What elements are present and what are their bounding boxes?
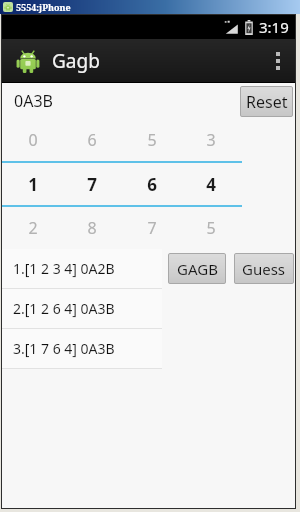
button[interactable]: 6 — [136, 163, 168, 205]
button[interactable]: More options — [260, 39, 295, 83]
button[interactable]: 7 — [136, 207, 168, 249]
staticText: 3:19 — [259, 17, 289, 37]
staticText: Reset — [246, 91, 288, 113]
staticText: 1 — [28, 173, 38, 196]
staticText: 7 — [87, 173, 97, 196]
button[interactable]: 2 — [17, 207, 49, 249]
staticText: 7 — [147, 217, 157, 239]
button[interactable]: Reset — [240, 86, 293, 117]
button[interactable]: 8 — [76, 207, 108, 249]
button[interactable]: 6 — [76, 119, 108, 161]
staticText: 0 — [28, 129, 38, 151]
staticText: 5 — [206, 217, 216, 239]
staticText: 3 — [206, 129, 216, 151]
staticText: 1.[1 2 3 4] 0A2B — [13, 259, 115, 278]
staticText: 0A3B — [14, 90, 53, 112]
staticText: 8 — [87, 217, 97, 239]
button[interactable]: 1 — [17, 163, 49, 205]
staticText: Gagb — [52, 48, 100, 74]
staticText: 5 — [147, 129, 157, 151]
staticText: 6 — [147, 173, 157, 196]
staticText: 2.[1 2 6 4] 0A3B — [13, 299, 115, 318]
staticText: Guess — [242, 259, 286, 279]
staticText: 4 — [206, 173, 216, 196]
button[interactable]: 2.[1 2 6 4] 0A3B — [2, 289, 162, 328]
button[interactable]: 3 — [195, 119, 227, 161]
button[interactable]: 3.[1 7 6 4] 0A3B — [2, 329, 162, 368]
button[interactable]: 4 — [195, 163, 227, 205]
button[interactable]: 7 — [76, 163, 108, 205]
staticText: GAGB — [177, 259, 218, 279]
staticText: 5554:jPhone — [16, 1, 71, 13]
button[interactable]: 0 — [17, 119, 49, 161]
staticText: 3.[1 7 6 4] 0A3B — [13, 339, 115, 358]
button[interactable]: GAGB — [168, 253, 226, 284]
button[interactable]: 5 — [195, 207, 227, 249]
button[interactable]: 5 — [136, 119, 168, 161]
button[interactable]: 1.[1 2 3 4] 0A2B — [2, 249, 162, 288]
staticText: 2 — [28, 217, 38, 239]
button[interactable]: Guess — [234, 253, 294, 284]
staticText: 6 — [87, 129, 97, 151]
